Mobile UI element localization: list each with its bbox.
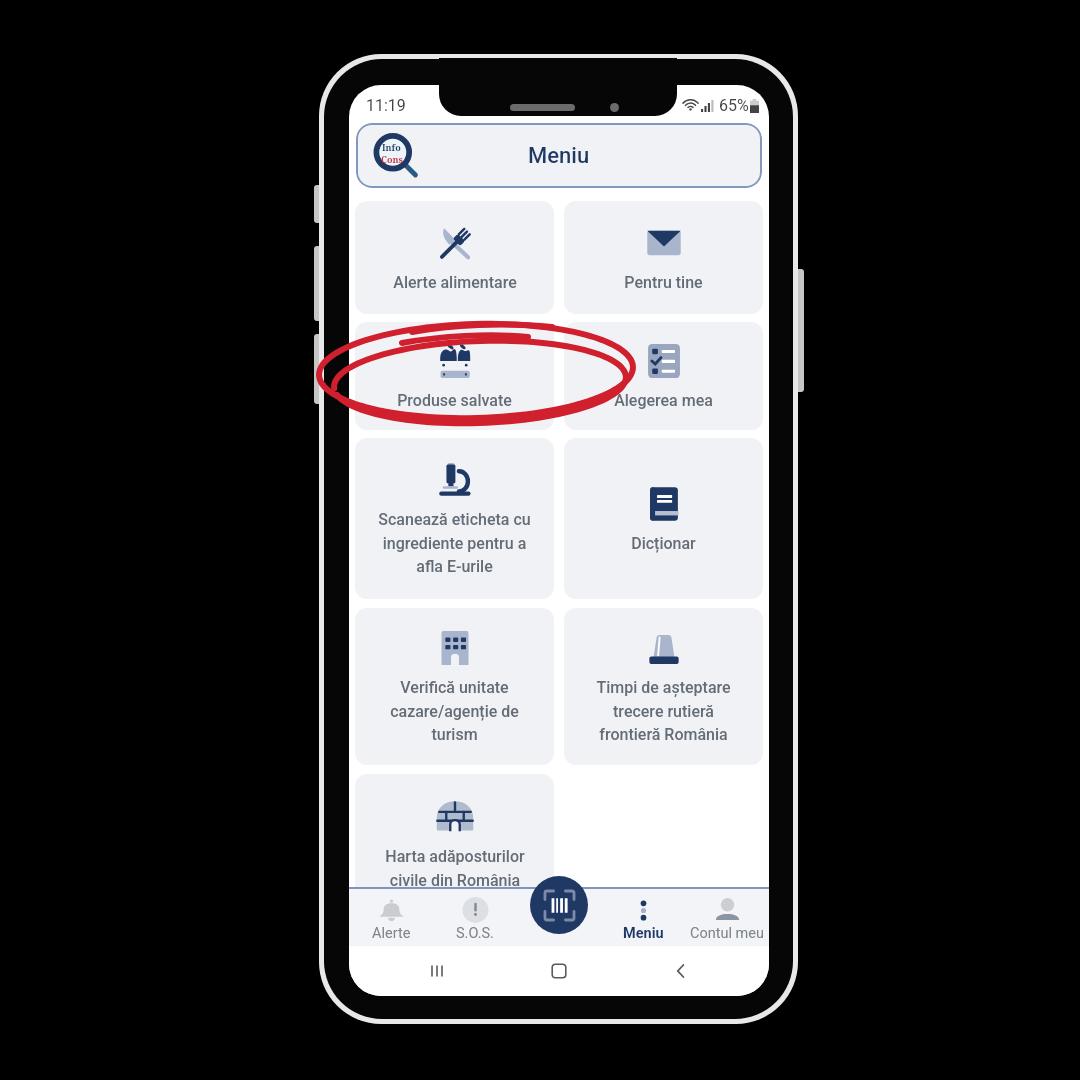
staticText: Info [382,141,401,153]
staticText: 11:19 [366,96,406,115]
button[interactable]: Alegerea mea [564,322,763,430]
button[interactable]: Verifică unitate cazare/agenție de turis… [355,608,554,765]
staticText: 65% [719,96,749,115]
button[interactable]: Scanează eticheta cu ingrediente pentru … [355,438,554,599]
button[interactable]: Meniu [601,892,685,946]
button[interactable]: Pentru tine [564,201,763,314]
staticText: Meniu [528,143,590,169]
button[interactable]: Contul meu [685,892,769,946]
staticText: Contul meu [690,925,764,942]
button[interactable]: Scanează cod de bare [530,876,588,934]
staticText: Alegerea mea [614,391,713,410]
staticText: Dicționar [631,534,696,553]
staticText: Alerte [372,925,411,942]
button[interactable]: Timpi de așteptare trecere rutieră front… [564,608,763,765]
staticText: Pentru tine [624,273,703,292]
button[interactable]: Dicționar [564,438,763,599]
staticText: Alerte alimentare [393,273,517,292]
button[interactable]: Produse salvate [355,322,554,430]
staticText: Cons [381,153,403,165]
staticText: S.O.S. [456,925,494,942]
staticText: Meniu [623,925,664,942]
button[interactable]: S.O.S. [433,892,517,946]
button[interactable]: Alerte [349,892,433,946]
staticText: Produse salvate [397,391,512,410]
button[interactable]: Harta adăposturilor civile din România [355,774,554,914]
staticText: Timpi de așteptare trecere rutieră front… [596,678,731,744]
staticText: Verifică unitate cazare/agenție de turis… [390,678,519,744]
button[interactable]: Alerte alimentare [355,201,554,314]
staticText: Scanează eticheta cu ingrediente pentru … [378,510,531,576]
button[interactable]: Info [356,123,762,188]
staticText: Harta adăposturilor civile din România [385,847,525,890]
